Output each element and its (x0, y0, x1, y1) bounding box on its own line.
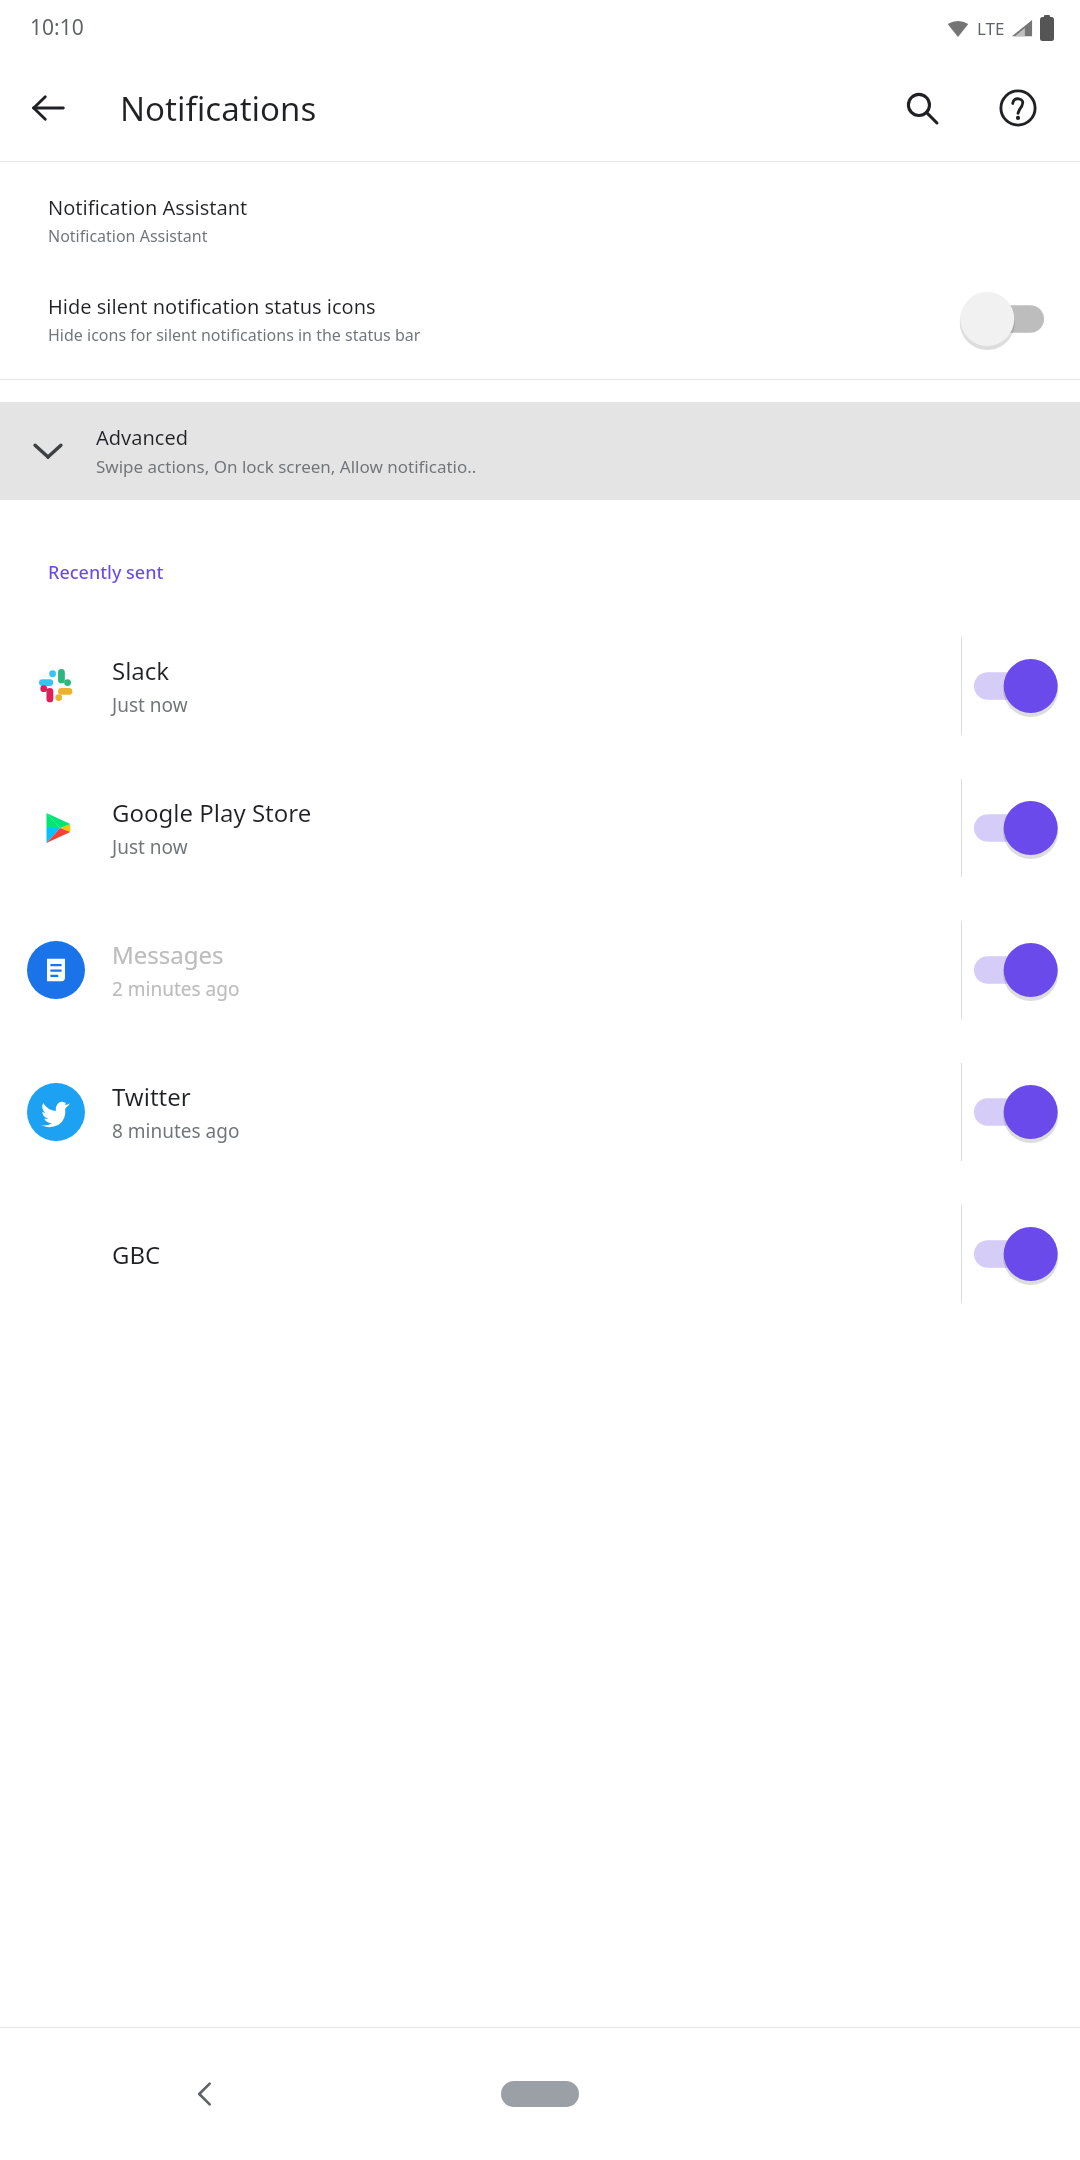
button[interactable]: Off (964, 289, 1056, 349)
staticText: Twitter (112, 1080, 191, 1113)
button[interactable]: On (962, 798, 1054, 858)
staticText: Notifications (120, 86, 874, 131)
button[interactable]: Home (485, 2064, 595, 2124)
staticText: Hide silent notification status icons (48, 293, 376, 320)
staticText: 8 minutes ago (112, 1118, 240, 1144)
button[interactable]: Back (170, 2059, 240, 2129)
staticText: LTE (977, 17, 1005, 40)
staticText: Recently sent (48, 560, 164, 585)
staticText: 10:10 (30, 13, 84, 42)
button[interactable]: Twitter (0, 1041, 1080, 1183)
button[interactable]: Back (0, 60, 96, 156)
button[interactable]: Hide silent notification status icons (0, 281, 1080, 357)
staticText: Advanced (96, 424, 188, 451)
button[interactable]: On (962, 940, 1054, 1000)
button[interactable]: On (962, 656, 1054, 716)
button[interactable]: Advanced (0, 402, 1080, 500)
staticText: Messages (112, 938, 224, 971)
staticText: GBC (112, 1238, 161, 1271)
button[interactable]: Notification Assistant (0, 184, 1080, 257)
button[interactable]: Messages (0, 899, 1080, 1041)
staticText: Notification Assistant (48, 194, 248, 221)
staticText: Notification Assistant (48, 225, 208, 247)
staticText: Swipe actions, On lock screen, Allow not… (96, 455, 477, 478)
staticText: Slack (112, 654, 170, 687)
staticText: Just now (112, 692, 188, 718)
button[interactable]: On (962, 1224, 1054, 1284)
button[interactable]: On (962, 1082, 1054, 1142)
staticText: 2 minutes ago (112, 976, 240, 1002)
button[interactable]: Slack (0, 615, 1080, 757)
button[interactable]: Help (970, 60, 1066, 156)
button[interactable]: GBC (0, 1183, 1080, 1325)
staticText: Just now (112, 834, 188, 860)
button[interactable]: Google Play Store (0, 757, 1080, 899)
button[interactable]: Search (874, 60, 970, 156)
staticText: Google Play Store (112, 796, 312, 829)
staticText: Hide icons for silent notifications in t… (48, 324, 421, 346)
